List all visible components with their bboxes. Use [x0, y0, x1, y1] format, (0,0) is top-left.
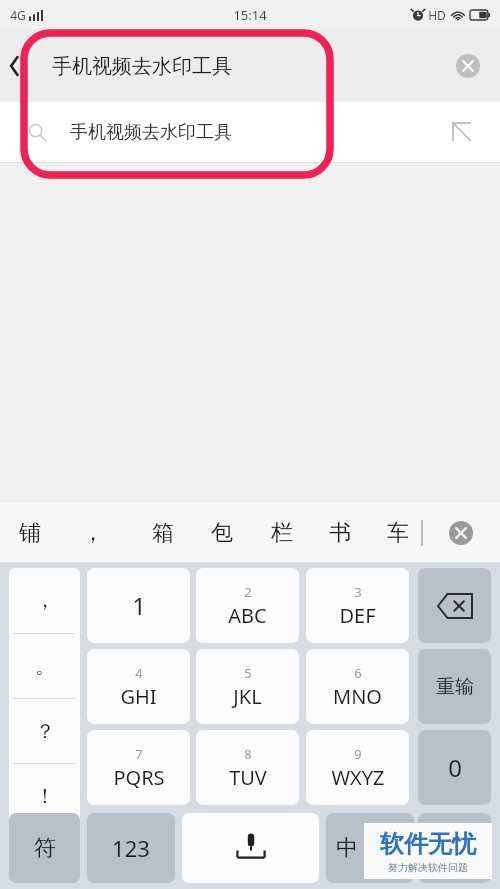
button[interactable]: Backspace: [418, 568, 491, 643]
button[interactable]: Clear: [450, 48, 486, 84]
button[interactable]: 3: [306, 568, 409, 643]
staticText: 包: [211, 519, 233, 547]
staticText: 铺: [19, 519, 41, 547]
staticText: WXYZ: [331, 764, 385, 791]
staticText: 符: [34, 834, 56, 862]
staticText: ？: [35, 719, 55, 744]
button[interactable]: ？: [9, 699, 80, 763]
button[interactable]: 5: [196, 649, 299, 724]
button[interactable]: 0: [418, 730, 491, 805]
button[interactable]: Voice input / Space: [182, 813, 319, 883]
button[interactable]: 铺: [8, 503, 52, 563]
button[interactable]: 栏: [260, 503, 304, 563]
staticText: 努力解决软件问题: [388, 861, 468, 874]
button[interactable]: ，: [9, 568, 80, 633]
button[interactable]: Back: [0, 30, 30, 102]
button[interactable]: 123: [87, 813, 175, 883]
button[interactable]: ，: [71, 503, 115, 563]
button[interactable]: 7: [87, 730, 190, 805]
staticText: ABC: [228, 602, 267, 629]
button[interactable]: 。: [9, 634, 80, 698]
staticText: TUV: [229, 764, 267, 791]
staticText: 7: [135, 745, 143, 763]
staticText: ，: [35, 588, 55, 613]
staticText: 。: [35, 654, 55, 679]
button[interactable]: 1: [87, 568, 190, 643]
staticText: 15:14: [233, 6, 267, 24]
staticText: 0: [448, 751, 462, 784]
button[interactable]: ！: [9, 764, 80, 828]
button[interactable]: 中: [326, 813, 414, 883]
button[interactable]: 书: [318, 503, 362, 563]
button[interactable]: 箱: [141, 503, 185, 563]
staticText: 9: [354, 745, 362, 763]
button[interactable]: Enter: [418, 813, 491, 883]
staticText: HD: [428, 7, 446, 23]
staticText: 6: [354, 664, 362, 682]
staticText: 2: [244, 583, 252, 601]
staticText: 5: [244, 664, 252, 682]
staticText: 3: [354, 583, 362, 601]
button[interactable]: 4: [87, 649, 190, 724]
staticText: MNO: [333, 683, 382, 710]
staticText: 手机视频去水印工具: [70, 121, 232, 144]
button[interactable]: 包: [200, 503, 244, 563]
button[interactable]: 重输: [418, 649, 491, 724]
button[interactable]: 9: [306, 730, 409, 805]
button[interactable]: 6: [306, 649, 409, 724]
button[interactable]: 8: [196, 730, 299, 805]
staticText: PQRS: [113, 764, 165, 791]
button[interactable]: 车: [376, 503, 420, 563]
staticText: DEF: [339, 602, 376, 629]
button[interactable]: Fill query: [444, 114, 480, 150]
staticText: ，: [82, 519, 104, 547]
staticText: 软件无忧: [380, 829, 476, 859]
staticText: 4: [135, 664, 143, 682]
staticText: 手机视频去水印工具: [52, 54, 232, 79]
staticText: 1: [132, 589, 146, 622]
button[interactable]: 符: [9, 813, 80, 883]
staticText: 栏: [271, 519, 293, 547]
staticText: 重输: [436, 675, 474, 699]
staticText: 8: [244, 745, 252, 763]
button[interactable]: 2: [196, 568, 299, 643]
staticText: JKL: [233, 683, 262, 710]
button[interactable]: Close keyboard: [441, 513, 481, 553]
staticText: 中: [336, 834, 358, 862]
staticText: GHI: [120, 683, 157, 710]
staticText: ！: [35, 784, 55, 809]
staticText: 车: [387, 519, 409, 547]
staticText: 4G: [10, 7, 26, 23]
button[interactable]: 手机视频去水印工具: [0, 102, 500, 162]
staticText: 123: [112, 833, 150, 863]
staticText: 书: [329, 519, 351, 547]
staticText: 箱: [152, 519, 174, 547]
